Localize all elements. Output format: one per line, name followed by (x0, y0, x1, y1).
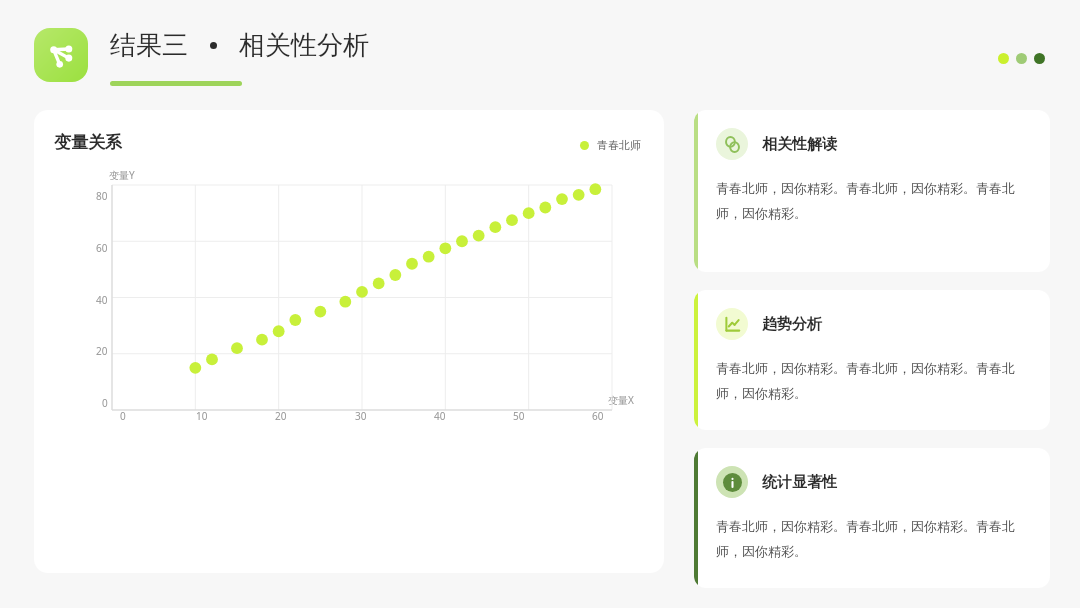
staticText: 相关性解读 (762, 135, 837, 154)
staticText: 0 (102, 396, 108, 410)
staticText: 20 (275, 409, 287, 423)
staticText: 青春北师，因你精彩。青春北师，因你精彩。青春北师，因你精彩。 (716, 180, 1028, 222)
staticText: 相关性分析 (239, 29, 369, 62)
staticText: 30 (355, 409, 367, 423)
staticText: 0 (120, 409, 126, 423)
staticText: 变量X (608, 393, 634, 407)
button[interactable]: 变量关系 (34, 110, 664, 573)
staticText: 趋势分析 (762, 315, 822, 334)
button[interactable]: 统计显著性 (694, 448, 1050, 588)
staticText: 40 (96, 293, 108, 307)
staticText: 60 (96, 241, 108, 255)
staticText: 10 (196, 409, 208, 423)
staticText: 变量Y (109, 168, 135, 182)
staticText: 青春北师，因你精彩。青春北师，因你精彩。青春北师，因你精彩。 (716, 518, 1028, 560)
button[interactable]: 相关性解读 (694, 110, 1050, 272)
button[interactable]: 趋势分析 (694, 290, 1050, 430)
staticText: 青春北师，因你精彩。青春北师，因你精彩。青春北师，因你精彩。 (716, 360, 1028, 402)
staticText: 变量关系 (54, 132, 122, 153)
staticText: 60 (592, 409, 604, 423)
staticText: 80 (96, 189, 108, 203)
staticText: 50 (513, 409, 525, 423)
staticText: 青春北师 (597, 138, 641, 152)
button[interactable]: 结果图标 (34, 28, 88, 82)
staticText: 结果三 (110, 29, 188, 62)
staticText: 40 (434, 409, 446, 423)
staticText: 20 (96, 344, 108, 358)
staticText: 统计显著性 (762, 473, 837, 492)
